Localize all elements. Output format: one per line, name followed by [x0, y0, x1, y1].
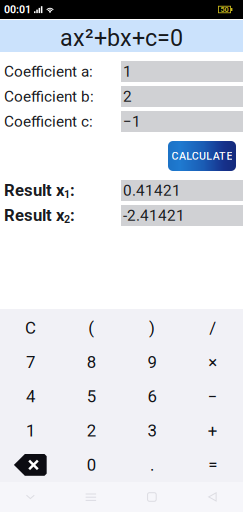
button[interactable]: 6 [121, 379, 182, 414]
button[interactable]: 4 [0, 379, 61, 414]
button[interactable]: C [0, 311, 61, 345]
button[interactable]: 8 [61, 345, 122, 379]
staticText: 1 [123, 62, 132, 80]
button[interactable]: ( [61, 311, 122, 345]
button[interactable]: 2 [61, 414, 122, 448]
staticText: 0 [87, 455, 96, 475]
staticText: Result x1: [4, 181, 75, 200]
staticText: 6 [147, 387, 156, 406]
button[interactable]: 5 [61, 379, 122, 414]
button[interactable]: 1 [0, 414, 61, 448]
staticText: / [209, 318, 216, 338]
staticText: = [208, 455, 217, 475]
staticText: ) [149, 318, 155, 338]
staticText: 8 [87, 352, 96, 372]
button[interactable]: . [121, 448, 182, 482]
button[interactable]: 3 [121, 414, 182, 448]
button[interactable]: 0 [61, 448, 122, 482]
staticText: -2.41421 [123, 206, 185, 224]
staticText: C [25, 318, 36, 338]
staticText: Coefficient a: [4, 62, 93, 80]
staticText: 1 [26, 421, 35, 441]
staticText: ( [88, 318, 94, 338]
staticText: CALCULATE [172, 150, 232, 162]
button[interactable]: = [182, 448, 243, 482]
staticText: 50 [220, 5, 228, 14]
staticText: −1 [123, 112, 141, 130]
staticText: Coefficient b: [4, 87, 94, 105]
button[interactable]: CALCULATE [168, 141, 236, 171]
button[interactable]: × [182, 345, 243, 379]
staticText: 0.41421 [123, 181, 181, 199]
staticText: 9 [147, 352, 156, 372]
staticText: 7 [26, 352, 35, 372]
staticText: 5 [87, 387, 96, 406]
staticText: Result x2: [4, 206, 75, 225]
button[interactable]: 2 [121, 86, 243, 107]
staticText: 2 [87, 421, 96, 441]
button[interactable]: 7 [0, 345, 61, 379]
staticText: ax²+bx+c=0 [60, 24, 183, 52]
button[interactable]: − [182, 379, 243, 414]
button[interactable]: −1 [121, 111, 243, 132]
staticText: Coefficient c: [4, 112, 93, 130]
button[interactable]: Backspace [0, 448, 61, 482]
staticText: 3 [147, 421, 156, 441]
staticText: 2 [123, 87, 132, 105]
staticText: × [208, 352, 217, 372]
staticText: 00:01 [4, 3, 31, 16]
staticText: + [208, 421, 218, 441]
button[interactable]: ) [121, 311, 182, 345]
button[interactable]: / [182, 311, 243, 345]
button[interactable]: 1 [121, 61, 243, 82]
staticText: . [150, 455, 154, 475]
staticText: − [208, 387, 218, 406]
staticText: 4 [26, 387, 35, 406]
button[interactable]: + [182, 414, 243, 448]
button[interactable]: 9 [121, 345, 182, 379]
